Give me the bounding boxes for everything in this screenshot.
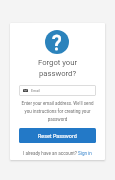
staticText: Forgot your password?	[10, 58, 105, 78]
staticText: ?	[52, 31, 62, 54]
button[interactable]: Reset Password	[19, 128, 96, 143]
other: Email	[23, 89, 28, 92]
staticText: I already have an account? Sign in	[23, 151, 92, 156]
staticText: Enter your email address. We'll send you…	[10, 101, 105, 123]
button[interactable]: I already have an account? Sign in	[23, 151, 92, 156]
button[interactable]: Email	[19, 85, 96, 96]
staticText: Email	[31, 89, 40, 93]
staticText: Reset Password	[38, 133, 77, 139]
other: Help	[45, 30, 69, 54]
